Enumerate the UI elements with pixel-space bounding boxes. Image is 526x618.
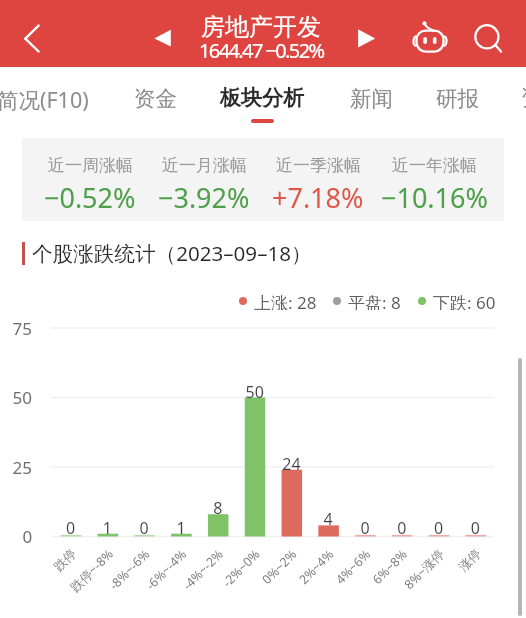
staticText: 近一月涨幅 <box>162 155 247 176</box>
staticText: 1644.47 −0.52% <box>199 37 324 64</box>
staticText: 资金 <box>134 85 177 112</box>
staticText: 近一季涨幅 <box>276 155 361 176</box>
button[interactable]: 新闻 <box>325 67 417 125</box>
staticText: 下跌: 60 <box>433 291 496 310</box>
staticText: 房地产开发 <box>201 12 321 42</box>
staticText: −0.52% <box>44 179 136 216</box>
button[interactable]: 资讯 <box>521 85 526 115</box>
button[interactable]: AI assistant <box>404 12 452 60</box>
staticText: 新闻 <box>350 85 393 112</box>
staticText: −3.92% <box>158 179 250 216</box>
button[interactable]: 近一季涨幅 <box>258 138 378 221</box>
staticText: 简况(F10) <box>0 85 89 114</box>
button[interactable]: 板块分析 <box>216 67 308 125</box>
staticText: 个股涨跌统计（2023–09–18） <box>32 239 312 267</box>
button[interactable]: Previous sector <box>144 20 181 57</box>
button[interactable]: 近一月涨幅 <box>144 138 264 221</box>
staticText: −10.16% <box>381 179 488 216</box>
button[interactable]: 近一周涨幅 <box>30 138 150 221</box>
staticText: 近一年涨幅 <box>392 155 477 176</box>
button[interactable]: 上涨: 28 <box>239 291 317 310</box>
staticText: 研报 <box>436 85 479 112</box>
staticText: 板块分析 <box>220 85 304 111</box>
button[interactable]: 简况(F10) <box>0 67 89 125</box>
staticText: 平盘: 8 <box>348 291 401 310</box>
staticText: +7.18% <box>272 179 364 216</box>
button[interactable]: 研报 <box>411 67 503 125</box>
button[interactable]: Search <box>468 14 512 58</box>
staticText: 资讯 <box>521 85 526 115</box>
button[interactable]: 资金 <box>109 67 201 125</box>
button[interactable]: 个股涨跌统计（2023–09–18） <box>32 239 312 267</box>
button[interactable]: 下跌: 60 <box>418 291 496 310</box>
staticText: 上涨: 28 <box>254 291 317 310</box>
button[interactable]: Next sector <box>348 20 385 57</box>
button[interactable]: Back <box>8 15 54 61</box>
staticText: 近一周涨幅 <box>48 155 133 176</box>
button[interactable]: 平盘: 8 <box>333 291 401 310</box>
button[interactable]: 近一年涨幅 <box>374 138 494 221</box>
